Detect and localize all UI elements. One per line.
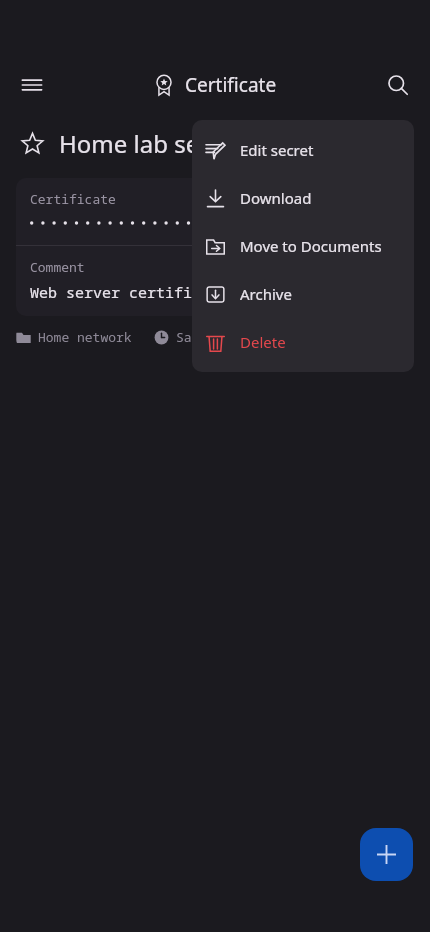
staticText: Download <box>240 188 312 208</box>
button[interactable]: Download <box>192 174 414 222</box>
button[interactable]: Home network <box>16 328 132 346</box>
button[interactable]: Edit secret <box>192 126 414 174</box>
button[interactable]: Add <box>360 828 413 881</box>
staticText: Delete <box>240 332 286 352</box>
staticText: Edit secret <box>240 140 314 160</box>
staticText: Comment <box>30 258 85 276</box>
button[interactable]: Favourite <box>14 125 50 161</box>
button[interactable]: Comment <box>16 246 414 316</box>
button[interactable]: Menu <box>10 63 54 107</box>
button[interactable]: Delete <box>192 318 414 366</box>
button[interactable]: Saved <box>154 328 216 346</box>
button[interactable]: Certificate <box>16 178 414 245</box>
staticText: Web server certificate for internal <box>30 282 346 302</box>
button[interactable]: Search <box>376 63 420 107</box>
button[interactable]: Move to Documents <box>192 222 414 270</box>
staticText: Home lab server <box>59 127 245 160</box>
staticText: Certificate <box>185 72 277 98</box>
staticText: Saved <box>176 328 216 346</box>
staticText: Archive <box>240 284 292 304</box>
staticText: Home network <box>38 328 132 346</box>
staticText: Move to Documents <box>240 236 382 256</box>
staticText: Certificate <box>30 190 116 208</box>
button[interactable]: Archive <box>192 270 414 318</box>
